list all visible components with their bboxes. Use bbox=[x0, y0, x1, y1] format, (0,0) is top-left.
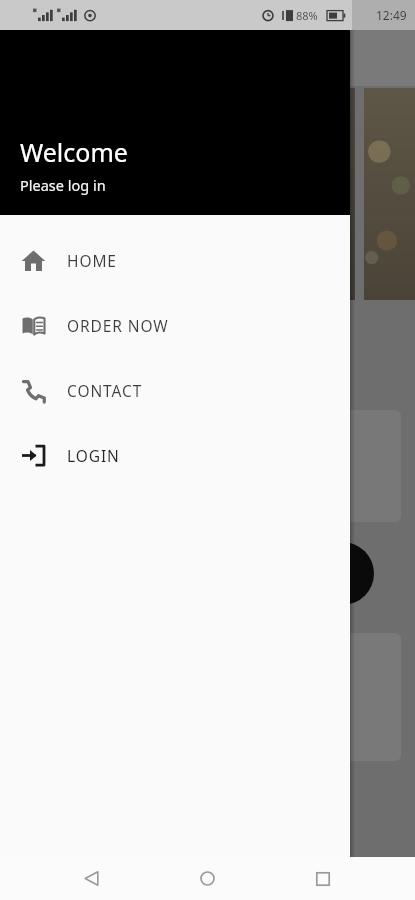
button[interactable]: CONTACT bbox=[0, 358, 350, 423]
staticText: HOME bbox=[67, 250, 117, 271]
staticText: Orders above minimum amount bbox=[30, 455, 257, 475]
button[interactable]: Recents bbox=[299, 857, 347, 900]
staticText: 12:49 bbox=[376, 7, 407, 23]
staticText: LOGIN bbox=[67, 445, 120, 466]
staticText: Welcome bbox=[20, 135, 128, 169]
button[interactable]: ORDER NOW bbox=[0, 293, 350, 358]
staticText: 88% bbox=[296, 8, 318, 23]
button[interactable]: Home bbox=[183, 857, 231, 900]
staticText: Please log in bbox=[20, 175, 106, 195]
staticText: ORDER NOW bbox=[67, 315, 169, 336]
staticText: CONTACT bbox=[67, 380, 143, 401]
button[interactable]: HOME bbox=[0, 228, 350, 293]
button[interactable]: LOGIN bbox=[0, 423, 350, 488]
button[interactable]: Back bbox=[67, 857, 115, 900]
